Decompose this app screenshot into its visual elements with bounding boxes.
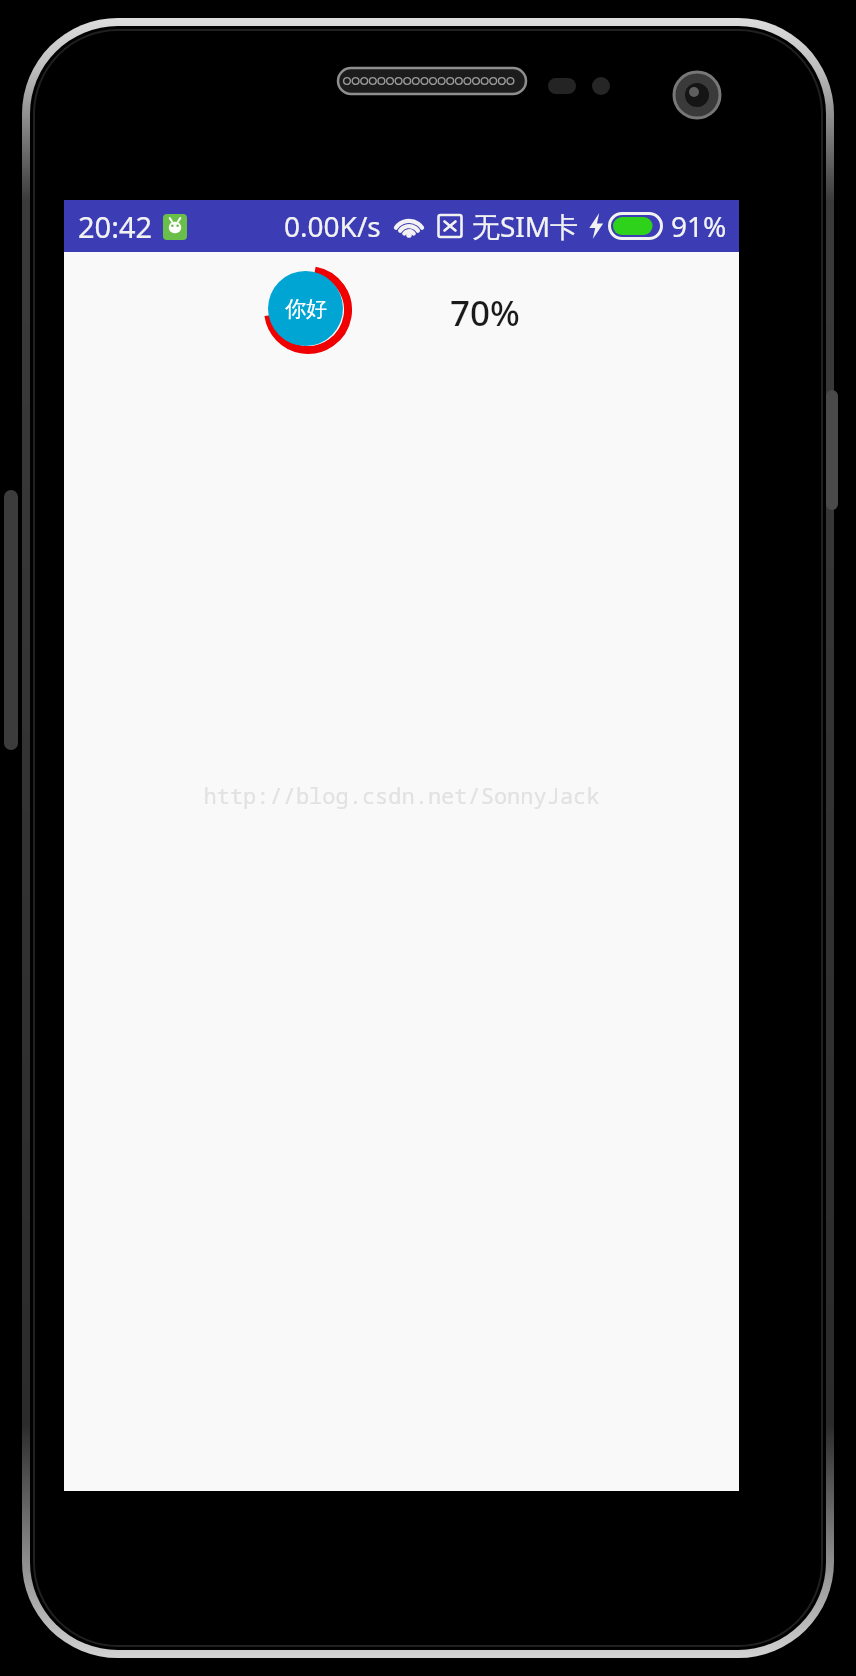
staticText: 20:42	[78, 207, 153, 246]
staticText: http://blog.csdn.net/SonnyJack	[203, 780, 600, 810]
staticText: 你好	[285, 296, 327, 322]
button[interactable]: 你好 progress button, 70 percent	[263, 265, 353, 355]
staticText: 91%	[671, 207, 727, 245]
staticText: 0.00K/s	[284, 207, 381, 245]
staticText: 70%	[450, 289, 520, 333]
staticText: 无SIM卡	[472, 207, 579, 245]
